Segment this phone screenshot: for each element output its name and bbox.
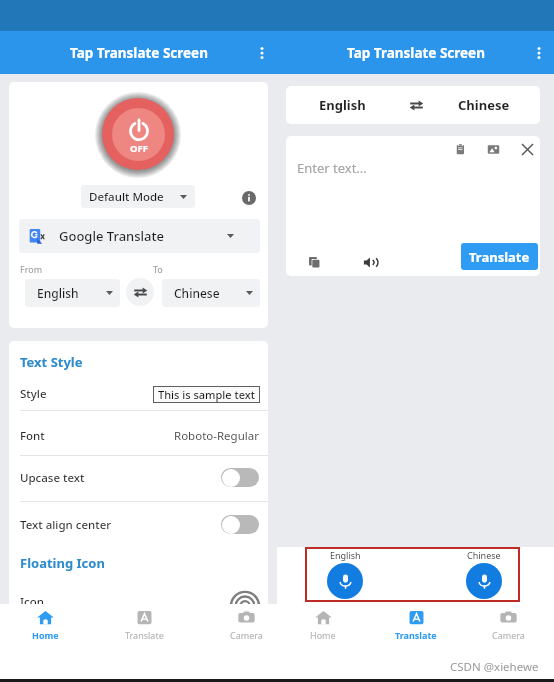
button[interactable]: Home	[278, 604, 368, 645]
button[interactable]: Camera	[463, 604, 553, 645]
button[interactable]: Style	[9, 379, 268, 409]
button[interactable]: History	[480, 136, 507, 163]
staticText: Text align center	[20, 517, 112, 533]
button[interactable]: English	[314, 549, 376, 599]
button[interactable]: Paste	[447, 136, 474, 163]
button[interactable]: Swap languages	[126, 278, 154, 306]
staticText: Tap Translate Screen	[70, 44, 208, 62]
staticText: Default Mode	[89, 189, 164, 205]
staticText: English	[319, 96, 366, 114]
staticText: Style	[20, 386, 47, 402]
button[interactable]: Speak	[358, 250, 382, 274]
staticText: Floating Icon	[20, 554, 105, 572]
staticText: Chinese	[458, 96, 510, 114]
staticText: Chinese	[174, 285, 220, 301]
button[interactable]: Chinese	[428, 86, 540, 124]
button[interactable]: More options	[249, 40, 275, 66]
staticText: Roboto-Regular	[174, 428, 259, 444]
staticText: Home	[310, 629, 336, 641]
staticText: To	[153, 263, 163, 275]
staticText: Translate	[469, 248, 530, 266]
button[interactable]: Swap languages	[401, 90, 431, 120]
button[interactable]: Translate	[371, 604, 461, 645]
staticText: Translate	[395, 629, 437, 641]
staticText: Home	[32, 629, 59, 641]
staticText: Translate	[125, 629, 164, 641]
staticText: Font	[20, 428, 45, 444]
button[interactable]: More options	[526, 40, 552, 66]
staticText: English	[330, 549, 361, 561]
button[interactable]: Home	[0, 604, 90, 645]
staticText: Camera	[230, 629, 263, 641]
staticText: Camera	[492, 629, 525, 641]
button[interactable]: Chinese	[453, 549, 515, 599]
button[interactable]: Icon	[9, 582, 268, 622]
staticText: Tap Translate Screen	[347, 44, 485, 62]
staticText: OFF	[130, 142, 148, 155]
staticText: This is sample text	[158, 387, 255, 402]
staticText: Enter text...	[297, 159, 367, 177]
button[interactable]: Info	[241, 190, 256, 205]
staticText: Upcase text	[20, 470, 85, 486]
button[interactable]: Chinese	[162, 279, 260, 307]
button[interactable]: Copy	[302, 250, 326, 274]
staticText: From	[20, 263, 43, 275]
button[interactable]: English	[25, 279, 120, 307]
button[interactable]: Google Translate	[19, 219, 260, 253]
button[interactable]: Translate	[99, 604, 189, 645]
button[interactable]: Camera	[201, 604, 291, 645]
button[interactable]: Upcase text	[9, 456, 268, 499]
button[interactable]: Default Mode	[81, 185, 195, 208]
button[interactable]: Text align center	[9, 503, 268, 546]
staticText: Text Style	[20, 353, 83, 371]
button[interactable]: Font	[9, 414, 268, 458]
staticText: Chinese	[467, 549, 501, 561]
staticText: CSDN @xiehewe	[450, 659, 539, 675]
button[interactable]: Translate	[461, 243, 538, 270]
button[interactable]: Power off	[102, 98, 174, 170]
button[interactable]: English	[286, 86, 398, 124]
staticText: English	[37, 285, 79, 301]
button[interactable]: Close	[514, 136, 540, 163]
staticText: Google Translate	[59, 227, 164, 245]
staticText: Icon	[20, 594, 44, 610]
